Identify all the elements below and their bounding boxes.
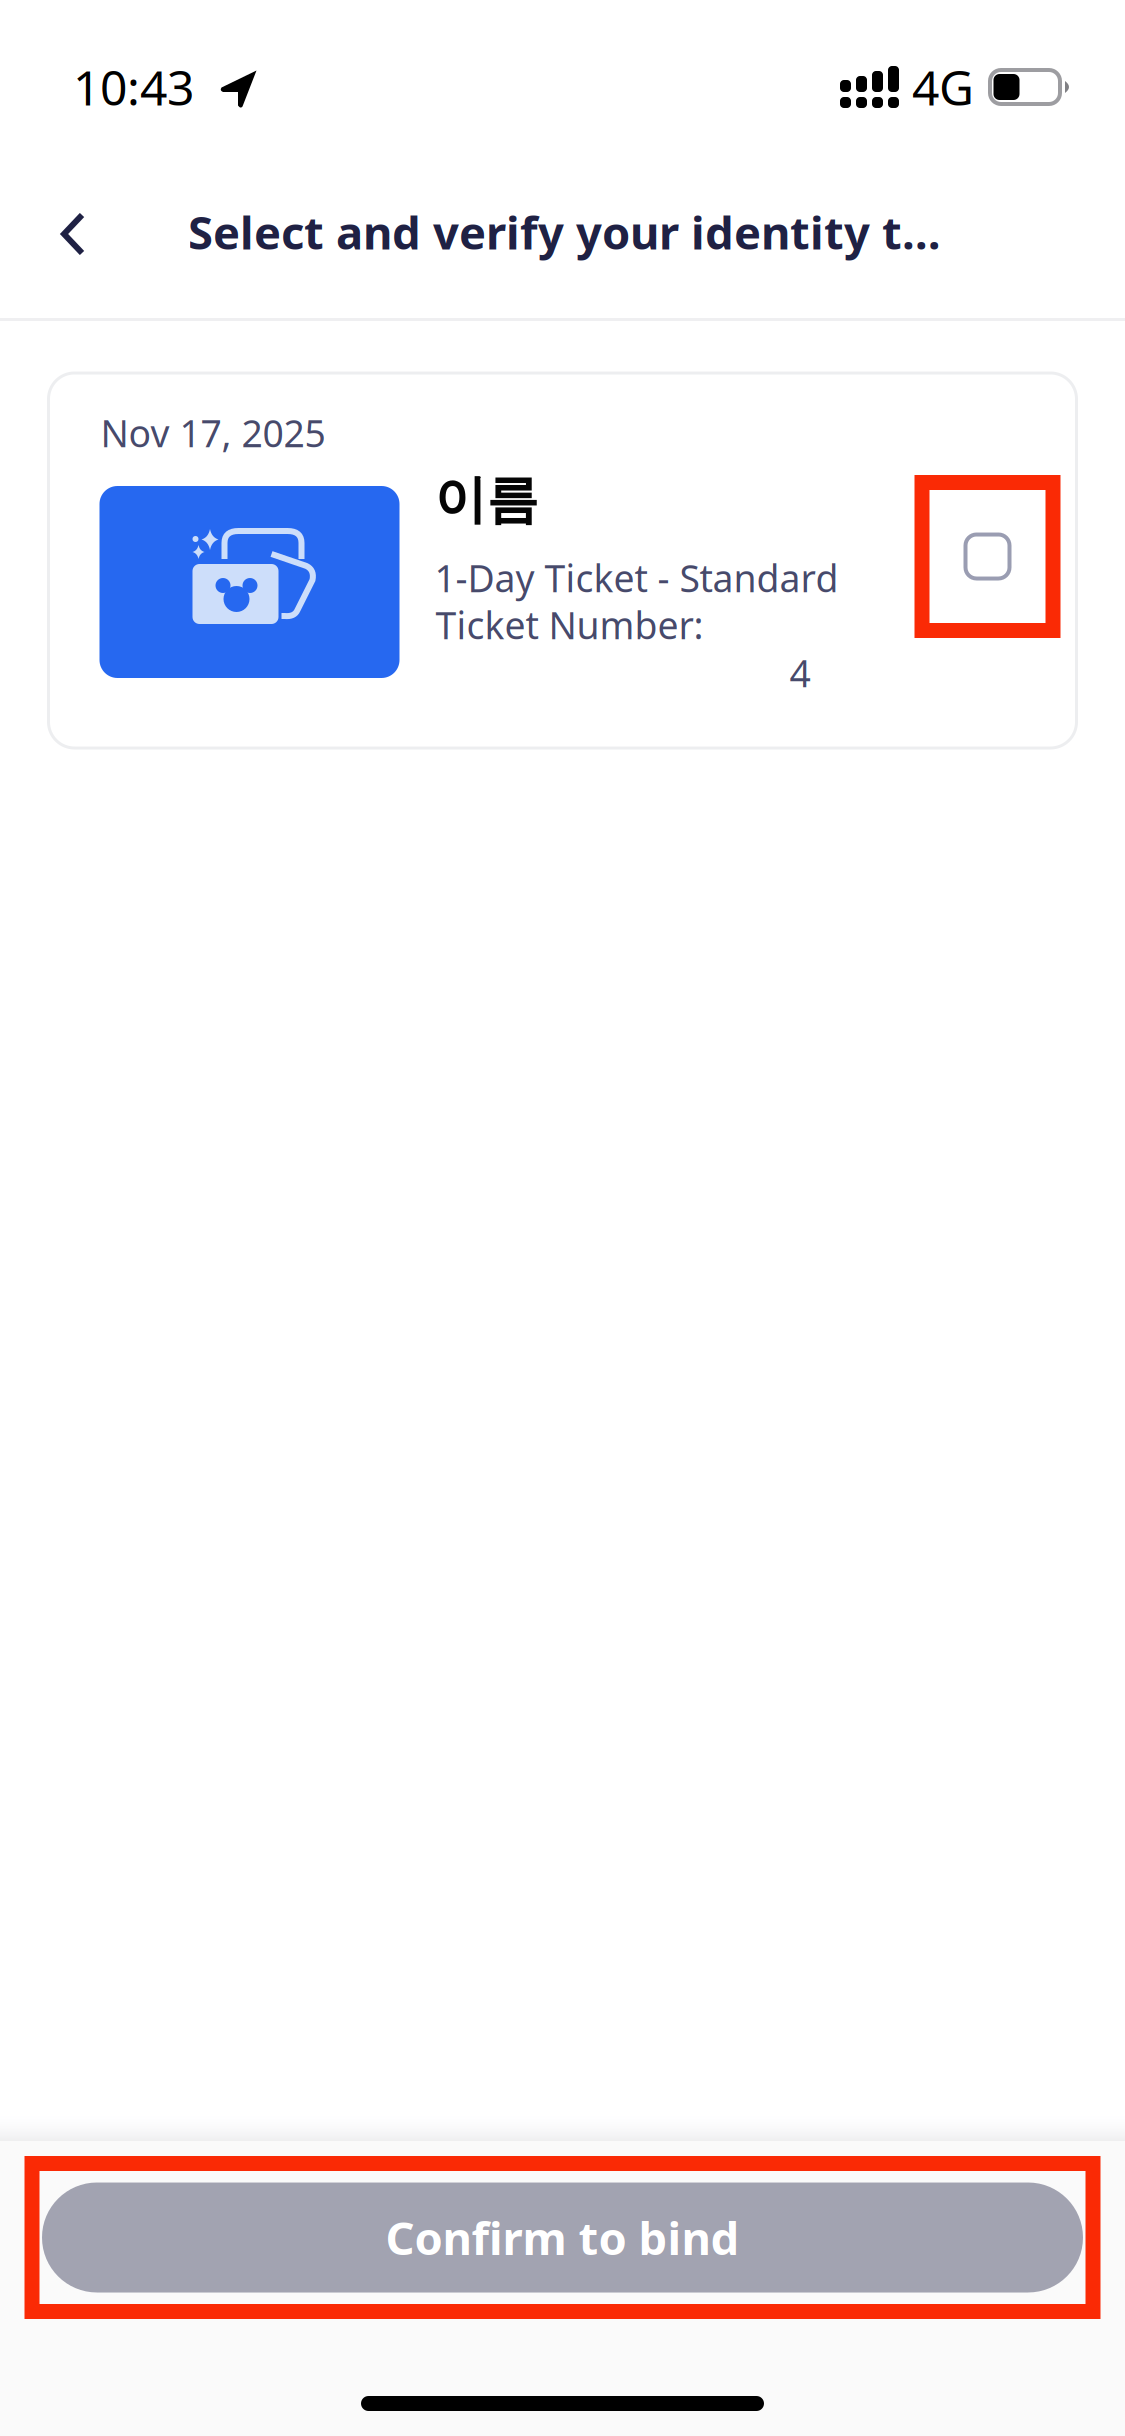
button[interactable]: Nov 17, 2025 <box>48 373 1076 748</box>
staticText: Confirm to bind <box>385 2207 739 2268</box>
staticText: 4G <box>912 55 974 119</box>
staticText: Nov 17, 2025 <box>100 408 325 458</box>
staticText: Select and verify your identity t… <box>188 202 941 262</box>
button[interactable]: Select ticket <box>914 475 1060 638</box>
button[interactable]: Confirm to bind <box>42 2182 1083 2292</box>
staticText: 10:43 <box>73 55 194 119</box>
staticText: 이름 <box>434 468 538 532</box>
button[interactable]: Back <box>18 179 128 289</box>
staticText: Ticket Number: <box>435 600 703 650</box>
staticText: 4 <box>789 648 810 698</box>
staticText: 1-Day Ticket - Standard <box>434 553 838 603</box>
